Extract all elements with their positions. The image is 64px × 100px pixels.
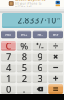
button[interactable]: 8 xyxy=(17,52,32,62)
button[interactable] xyxy=(32,84,47,94)
staticText: 0 xyxy=(6,83,11,95)
staticText: mr xyxy=(53,32,59,37)
staticText: 26 xyxy=(56,17,60,20)
button[interactable] xyxy=(48,84,63,94)
staticText: 8 xyxy=(22,50,27,63)
button[interactable]: mc xyxy=(1,31,15,38)
staticText: Wooden Labyrinth 3D xyxy=(15,0,46,1)
button[interactable]: mr xyxy=(49,31,63,38)
staticText: m- xyxy=(37,32,42,37)
staticText: mc xyxy=(5,32,11,37)
staticText: . xyxy=(23,83,26,95)
button[interactable]: Wooden Labyrinth 3D advertisement xyxy=(0,0,64,7)
button[interactable]: C xyxy=(1,41,16,51)
staticText: % xyxy=(20,40,28,52)
staticText: C xyxy=(5,40,11,52)
button[interactable]: % xyxy=(17,41,32,51)
button[interactable] xyxy=(48,52,63,62)
staticText: 9 xyxy=(37,50,42,63)
staticText: 3 xyxy=(37,72,42,84)
button[interactable]: 2 xyxy=(17,73,32,83)
staticText: 2.8337·10 xyxy=(17,15,56,26)
button[interactable]: m+ xyxy=(17,31,31,38)
staticText: 6 xyxy=(37,61,42,74)
button[interactable] xyxy=(48,73,63,83)
staticText: m+ xyxy=(21,32,27,37)
button[interactable]: 5 xyxy=(17,63,32,72)
button[interactable]: m- xyxy=(33,31,47,38)
button[interactable]: 6 xyxy=(32,63,47,72)
button[interactable]: 3 xyxy=(32,73,47,83)
staticText: 2 xyxy=(22,72,27,84)
button[interactable] xyxy=(32,41,47,51)
staticText: Tilt your iPhone to roll the ball xyxy=(15,2,42,9)
staticText: 4 xyxy=(6,61,11,74)
button[interactable]: 7 xyxy=(1,52,16,62)
staticText: 5 xyxy=(22,61,27,74)
button[interactable]: . xyxy=(17,84,32,94)
button[interactable]: 4 xyxy=(1,63,16,72)
button[interactable]: 1 xyxy=(1,73,16,83)
button[interactable]: 9 xyxy=(32,52,47,62)
button[interactable]: 0 xyxy=(1,84,16,94)
staticText: 1 xyxy=(6,72,11,84)
button[interactable] xyxy=(48,41,63,51)
staticText: 7 xyxy=(6,50,11,63)
button[interactable] xyxy=(48,63,63,72)
